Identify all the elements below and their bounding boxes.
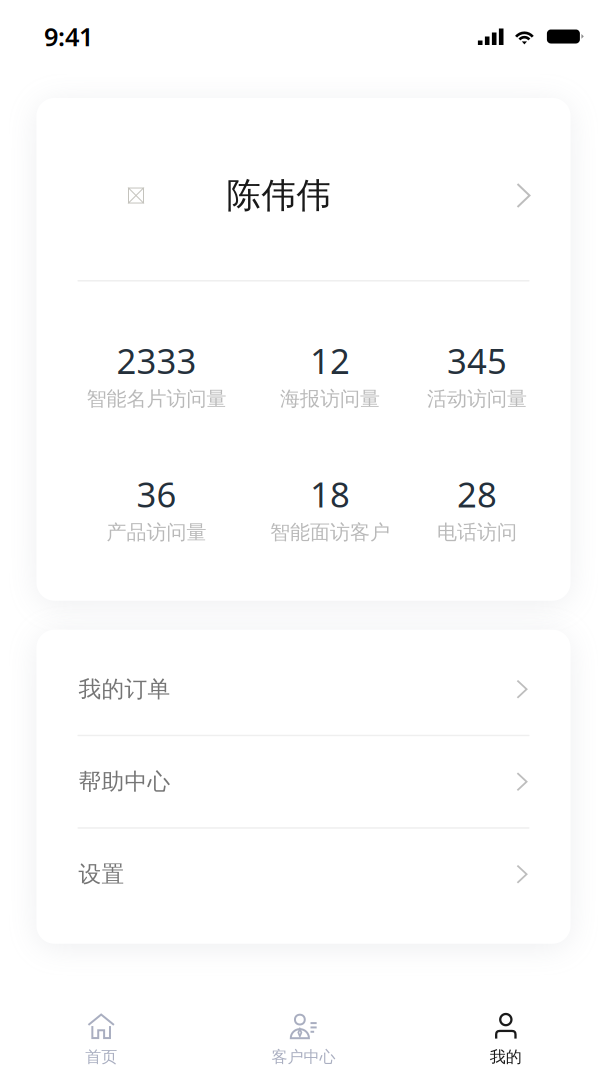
staticText: 智能名片访问量: [86, 386, 226, 411]
image: [128, 187, 144, 203]
staticText: 36: [136, 471, 176, 517]
button[interactable]: 客户中心: [202, 999, 405, 1080]
button[interactable]: 我的: [405, 999, 607, 1080]
staticText: 首页: [85, 1047, 117, 1067]
button[interactable]: 设置: [36, 829, 570, 920]
staticText: 345: [447, 337, 507, 383]
staticText: 我的订单: [78, 675, 170, 703]
staticText: 陈伟伟: [226, 174, 331, 217]
staticText: 9:41: [44, 20, 93, 53]
staticText: 活动访问量: [427, 386, 527, 411]
staticText: 12: [310, 337, 350, 383]
staticText: 海报访问量: [280, 386, 380, 411]
staticText: 28: [457, 471, 497, 517]
staticText: 我的: [490, 1047, 522, 1067]
staticText: 客户中心: [271, 1047, 335, 1067]
staticText: 产品访问量: [106, 520, 206, 545]
button[interactable]: 陈伟伟: [36, 98, 570, 280]
staticText: 18: [310, 471, 350, 517]
button[interactable]: 首页: [0, 999, 202, 1080]
staticText: 帮助中心: [78, 768, 170, 796]
button[interactable]: 帮助中心: [36, 736, 570, 827]
staticText: 智能面访客户: [270, 520, 390, 545]
staticText: 设置: [78, 860, 124, 888]
staticText: 电话访问: [437, 520, 517, 545]
button[interactable]: 我的订单: [36, 644, 570, 735]
staticText: 2333: [116, 337, 196, 383]
